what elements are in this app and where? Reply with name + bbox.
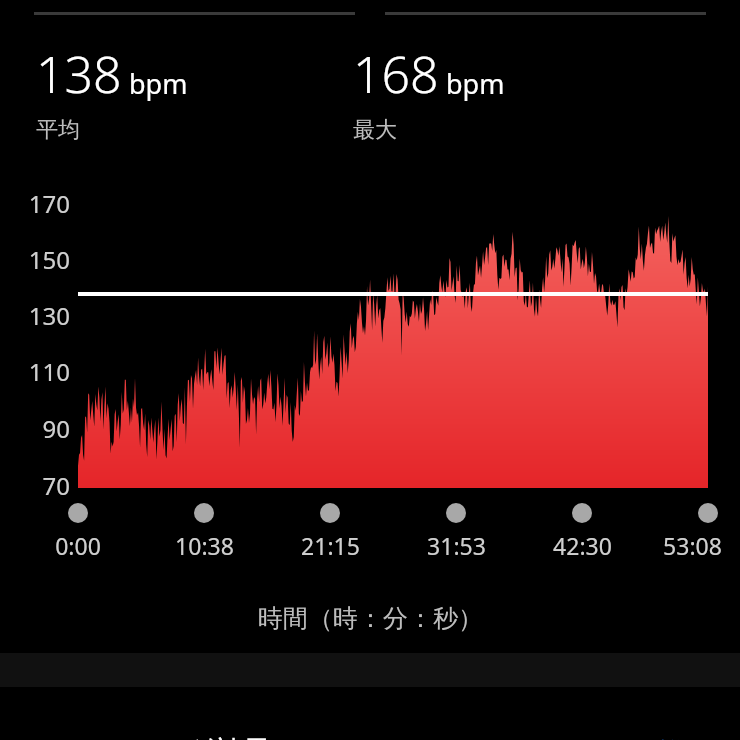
staticText: トレーニング効果	[36, 733, 272, 740]
staticText: 170	[28, 187, 70, 220]
staticText: 130	[28, 299, 70, 332]
staticText: 10:38	[175, 530, 234, 561]
staticText: 53:08	[663, 530, 722, 561]
staticText: 21:15	[301, 530, 360, 561]
button[interactable]: トレーニング効果	[0, 700, 740, 740]
staticText: bpm	[129, 65, 188, 102]
staticText: 平均	[36, 116, 80, 144]
staticText: 168	[353, 40, 439, 108]
staticText: 31:53	[427, 530, 486, 561]
staticText: 138	[36, 40, 122, 108]
staticText: 詳細	[660, 736, 708, 740]
staticText: 70	[42, 469, 70, 502]
staticText: 90	[42, 412, 70, 445]
staticText: 110	[28, 355, 70, 388]
button[interactable]: 心拍数グラフ	[0, 0, 740, 740]
button[interactable]: 138	[0, 40, 351, 144]
staticText: bpm	[446, 65, 505, 102]
staticText: 最大	[353, 116, 397, 144]
button[interactable]: 168	[351, 40, 702, 144]
staticText: 150	[28, 243, 70, 276]
staticText: 42:30	[553, 530, 612, 561]
staticText: 0:00	[55, 530, 101, 561]
staticText: 時間（時：分：秒）	[258, 603, 483, 634]
